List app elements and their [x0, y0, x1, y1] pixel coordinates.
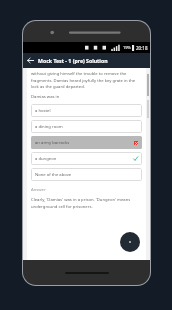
button[interactable]: a hostel [31, 104, 142, 117]
button[interactable]: Back [23, 53, 38, 68]
button[interactable]: an army barracks [31, 136, 142, 149]
staticText: None of the above [35, 172, 72, 178]
staticText: Damias was in [31, 94, 60, 100]
staticText: a dining room [35, 124, 63, 130]
button[interactable]: a dungeon [31, 152, 142, 165]
staticText: an army barracks [35, 140, 70, 146]
staticText: a dungeon [35, 156, 57, 162]
staticText: 20:18 [136, 45, 148, 51]
staticText: without giving himself the trouble to re… [31, 71, 142, 89]
staticText: 19% [123, 45, 131, 50]
button[interactable]: Next question [120, 232, 140, 252]
staticText: Clearly, 'Damias' was in a prison. 'Dung… [31, 197, 142, 209]
button[interactable]: a dining room [31, 120, 142, 133]
staticText: a hostel [35, 108, 51, 114]
staticText: Mock Test - 1 (pre) Solution [38, 57, 108, 64]
button[interactable]: None of the above [31, 168, 142, 181]
staticText: Answer [31, 187, 46, 193]
